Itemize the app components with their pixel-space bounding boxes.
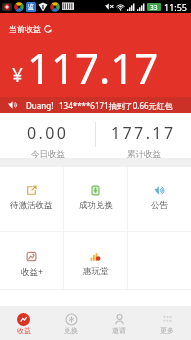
button[interactable]: Duang! <box>0 97 191 113</box>
staticText: ¥ <box>12 62 23 88</box>
staticText: 公告 <box>151 200 168 211</box>
staticText: 待激活收益 <box>10 200 53 211</box>
staticText: 累计收益 <box>127 149 161 160</box>
staticText: 0.00 <box>27 122 69 144</box>
staticText: 邀请 <box>112 326 126 335</box>
staticText: 监 <box>28 3 35 11</box>
staticText: 兑换 <box>64 326 78 335</box>
staticText: Duang! <box>26 100 54 111</box>
button[interactable]: 收益 <box>0 306 47 340</box>
staticText: 今日收益 <box>31 149 65 160</box>
staticText: 当前收益 <box>9 24 41 34</box>
button[interactable]: 兑换 <box>47 306 95 340</box>
staticText: 更多 <box>160 326 174 335</box>
staticText: 117.17 <box>27 39 159 96</box>
button[interactable]: 惠玩堂 <box>64 232 127 289</box>
button[interactable]: 邀请 <box>95 306 143 340</box>
button[interactable]: 更多 <box>143 306 191 340</box>
button[interactable]: 0.00 <box>0 113 95 158</box>
button[interactable]: 成功兑换 <box>64 167 127 231</box>
button[interactable]: 公告 <box>128 167 191 231</box>
other: Refresh <box>44 25 52 33</box>
staticText: 收益 <box>17 326 31 335</box>
staticText: 成功兑换 <box>79 200 113 211</box>
staticText: 33 <box>150 3 158 11</box>
staticText: 177.17 <box>111 122 176 144</box>
staticText: 惠玩堂 <box>83 266 109 277</box>
staticText: 134****6171抽到了0.66元红包 <box>59 100 173 111</box>
staticText: 11:55 <box>164 1 188 13</box>
staticText: 收益+ <box>21 266 43 278</box>
button[interactable]: 177.17 <box>96 113 191 158</box>
button[interactable]: 待激活收益 <box>0 167 63 231</box>
button[interactable]: 当前收益 <box>9 24 52 34</box>
button[interactable]: 收益+ <box>0 232 63 289</box>
